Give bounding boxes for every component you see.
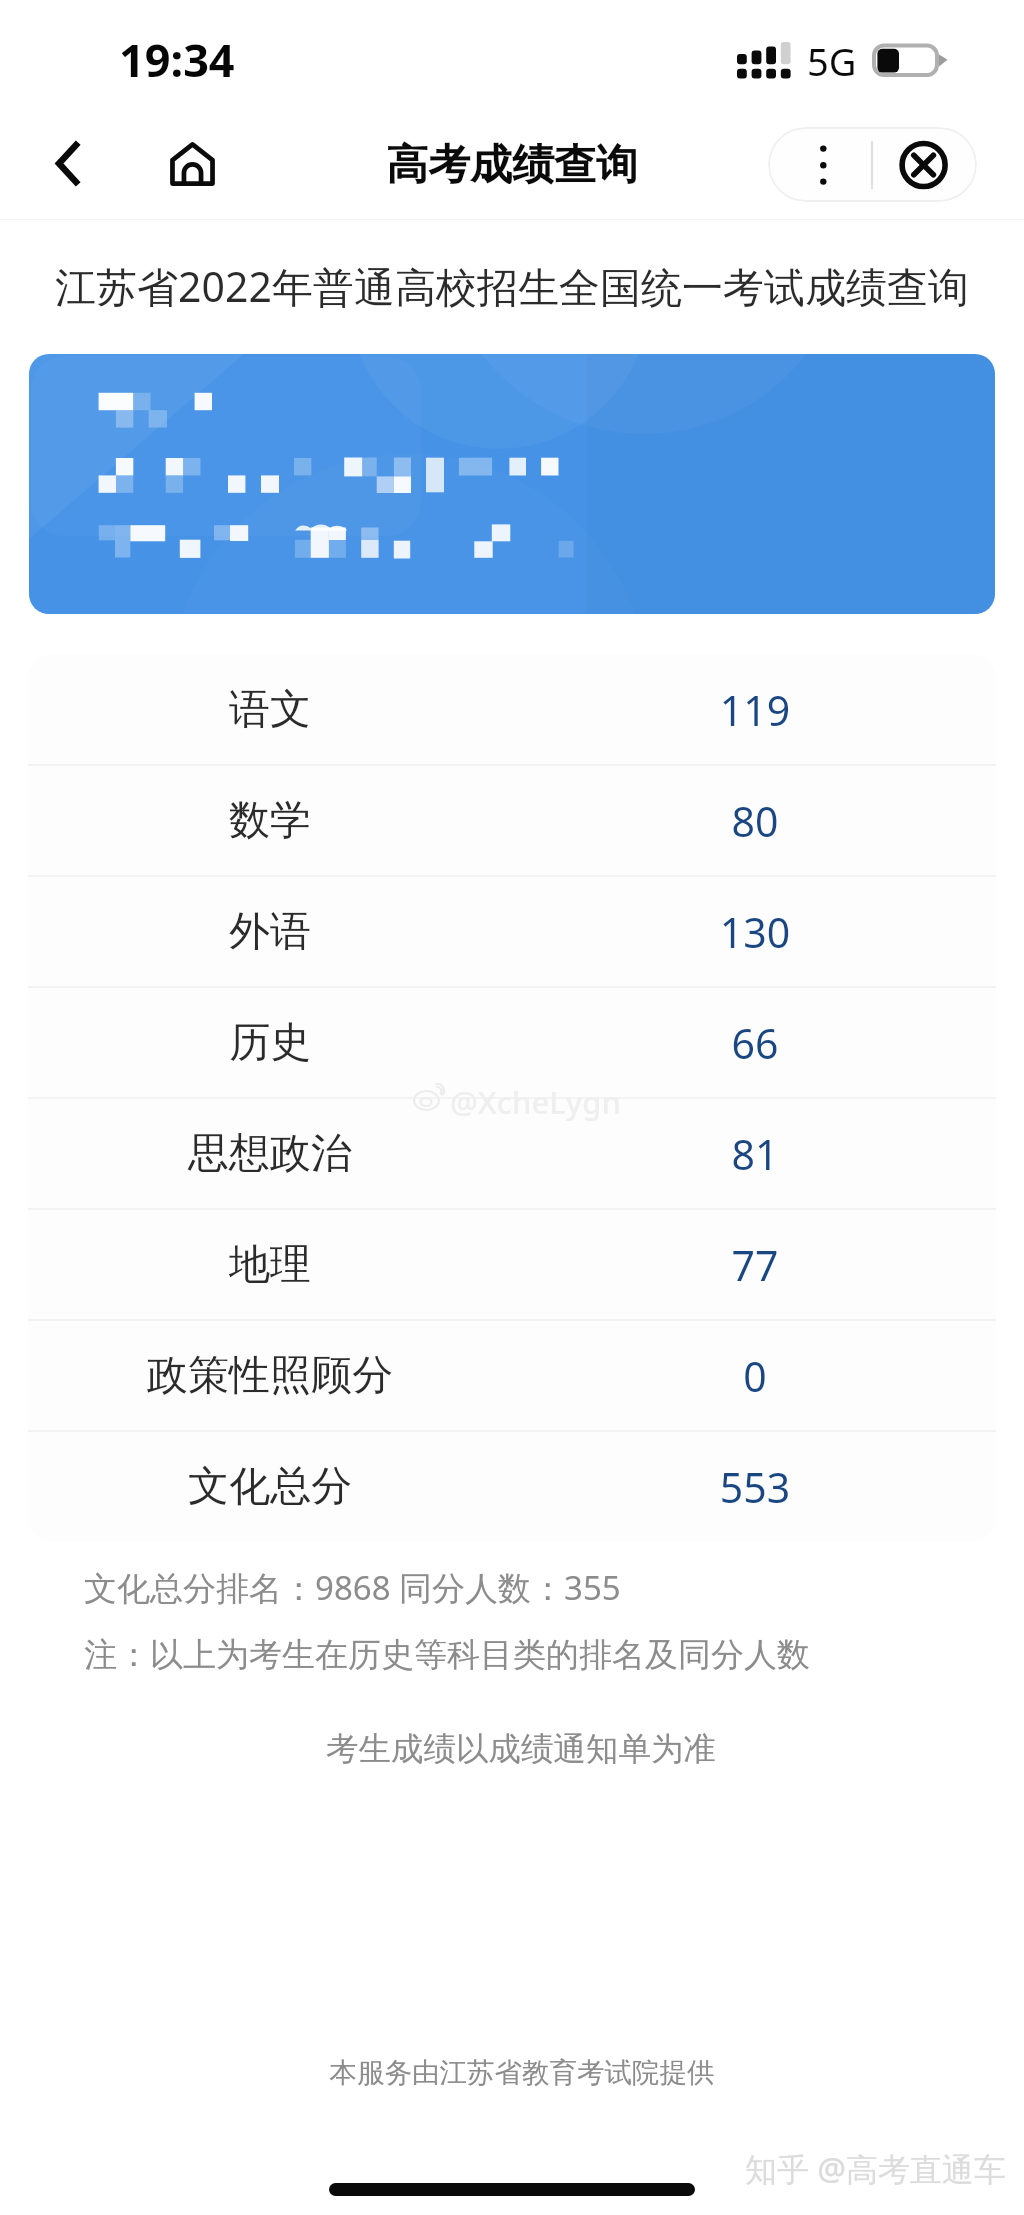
staticText: 知乎 @高考直通车 — [745, 2147, 1007, 2191]
button[interactable]: Close — [873, 127, 977, 202]
staticText: 地理 — [70, 1239, 470, 1291]
button[interactable]: 政策性照顾分 — [28, 1321, 996, 1430]
staticText: 77 — [605, 1237, 905, 1293]
staticText: 19:34 — [119, 29, 235, 90]
staticText: 文化总分 — [70, 1461, 470, 1513]
staticText: @XcheLygn — [450, 1081, 621, 1123]
button[interactable]: 语文 — [28, 655, 996, 764]
staticText: 130 — [605, 904, 905, 960]
staticText: 本服务由江苏省教育考试院提供 — [10, 2056, 1024, 2091]
button[interactable]: 数学 — [28, 766, 996, 875]
button[interactable]: Home — [154, 126, 230, 202]
staticText: 119 — [605, 682, 905, 738]
button[interactable]: 历史 — [28, 988, 996, 1097]
staticText: 政策性照顾分 — [70, 1350, 470, 1402]
button[interactable]: 地理 — [28, 1210, 996, 1319]
staticText: 66 — [605, 1015, 905, 1071]
button[interactable]: More options — [768, 127, 871, 202]
staticText: 数学 — [70, 795, 470, 847]
staticText: 外语 — [70, 906, 470, 958]
staticText: 语文 — [70, 684, 470, 736]
button[interactable]: 外语 — [28, 877, 996, 986]
button[interactable]: Back — [28, 130, 104, 198]
staticText: 高考成绩查询 — [0, 139, 1024, 192]
staticText: 注：以上为考生在历史等科目类的排名及同分人数 — [84, 1634, 810, 1676]
staticText: 553 — [605, 1459, 905, 1515]
staticText: 5G — [807, 35, 857, 87]
staticText: 考生成绩以成绩通知单为准 — [9, 1729, 1024, 1770]
staticText: 思想政治 — [70, 1128, 470, 1180]
staticText: 历史 — [70, 1017, 470, 1069]
staticText: 80 — [605, 793, 905, 849]
button[interactable]: 思想政治 — [28, 1099, 996, 1208]
button[interactable]: 文化总分 — [28, 1432, 996, 1541]
staticText: 81 — [605, 1126, 905, 1182]
staticText: 0 — [605, 1348, 905, 1404]
staticText: 江苏省2022年普通高校招生全国统一考试成绩查询 — [0, 258, 1024, 314]
staticText: 文化总分排名：9868 同分人数：355 — [84, 1565, 621, 1610]
